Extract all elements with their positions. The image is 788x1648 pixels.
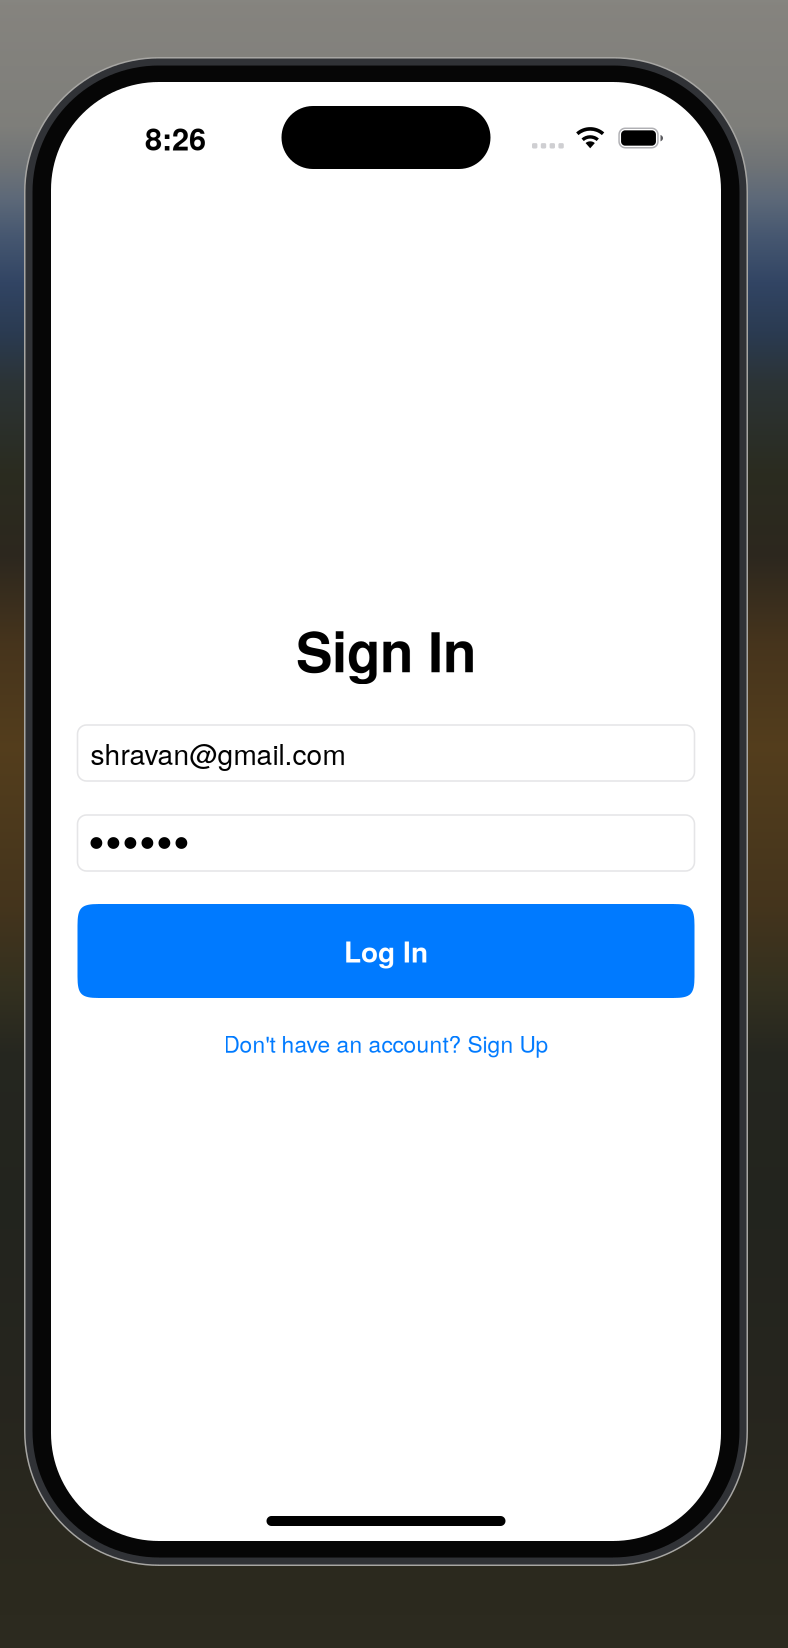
staticText: Don't have an account? Sign Up: [223, 1027, 548, 1059]
staticText: shravan@gmail.com: [90, 733, 345, 773]
staticText: Sign In: [296, 611, 476, 689]
staticText: Log In: [344, 931, 428, 971]
button[interactable]: Log In: [77, 904, 694, 998]
button[interactable]: [77, 815, 694, 871]
staticText: 8:26: [145, 116, 206, 160]
button[interactable]: Don't have an account? Sign Up: [77, 1022, 694, 1064]
button[interactable]: shravan@gmail.com: [77, 725, 694, 781]
